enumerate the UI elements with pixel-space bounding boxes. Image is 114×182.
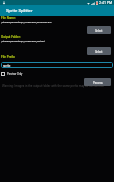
staticText: Select bbox=[95, 50, 103, 53]
staticText: 2:41 PM bbox=[99, 1, 113, 5]
staticText: File Name: bbox=[1, 16, 16, 20]
other: Signal bbox=[91, 2, 95, 5]
staticText: sprite bbox=[3, 64, 11, 67]
staticText: Warning: Images in the output folder wit… bbox=[2, 84, 105, 88]
button[interactable]: sprite bbox=[1, 62, 113, 68]
staticText: /storage/emulated/0/TrueGuess/pyramids.j… bbox=[1, 21, 52, 24]
staticText: /storage/emulated/0/TrueGuess/output bbox=[1, 40, 45, 43]
staticText: Preview Only bbox=[7, 72, 23, 75]
button[interactable]: Select bbox=[87, 26, 111, 34]
staticText: Sprite Splitter bbox=[6, 8, 33, 13]
other: Wi-Fi bbox=[87, 2, 90, 5]
button[interactable]: Preview Only bbox=[1, 71, 23, 76]
staticText: Select bbox=[95, 29, 103, 32]
button[interactable]: Process bbox=[84, 78, 111, 86]
staticText: Process bbox=[93, 81, 103, 84]
staticText: Output Folder: bbox=[1, 35, 21, 39]
other: Battery bbox=[96, 1, 98, 5]
button[interactable]: Select bbox=[87, 47, 111, 55]
other: Downloading bbox=[2, 1, 6, 5]
staticText: File Prefix bbox=[1, 55, 15, 59]
